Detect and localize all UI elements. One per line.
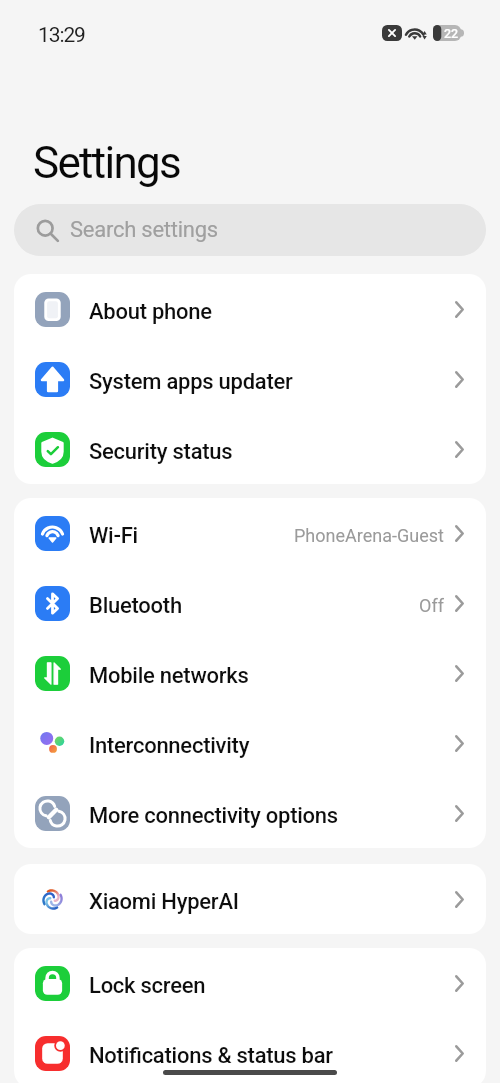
staticText: About phone [89,299,212,325]
staticText: Wi-Fi [89,523,138,549]
button[interactable]: Interconnectivity [14,708,486,778]
staticText: Security status [89,439,233,465]
button[interactable]: Mobile networks [14,638,486,708]
button[interactable]: Xiaomi HyperAI [14,864,486,934]
staticText: Lock screen [89,973,206,999]
other: Battery 22 percent [433,25,464,41]
staticText: Search settings [70,217,218,243]
staticText: Mobile networks [89,663,249,689]
staticText: Settings [33,137,181,189]
button[interactable]: More connectivity options [14,778,486,848]
button[interactable]: Bluetooth [14,568,486,638]
staticText: Xiaomi HyperAI [89,889,239,915]
staticText: 13:29 [38,23,85,48]
staticText: PhoneArena-Guest [294,525,444,546]
button[interactable]: Wi-Fi [14,498,486,568]
staticText: 22 [444,26,459,41]
other: Wi-Fi [406,25,427,41]
button[interactable]: Notifications & status bar [14,1018,486,1083]
staticText: Notifications & status bar [89,1043,333,1069]
other: No SIM card [382,25,402,41]
button[interactable]: Security status [14,414,486,484]
staticText: Interconnectivity [89,733,250,759]
button[interactable]: Lock screen [14,948,486,1018]
button[interactable]: About phone [14,274,486,344]
staticText: System apps updater [89,369,293,395]
button[interactable]: System apps updater [14,344,486,414]
staticText: Bluetooth [89,593,182,619]
button[interactable]: Search settings [14,204,486,256]
staticText: Off [419,595,444,616]
staticText: More connectivity options [89,803,338,829]
